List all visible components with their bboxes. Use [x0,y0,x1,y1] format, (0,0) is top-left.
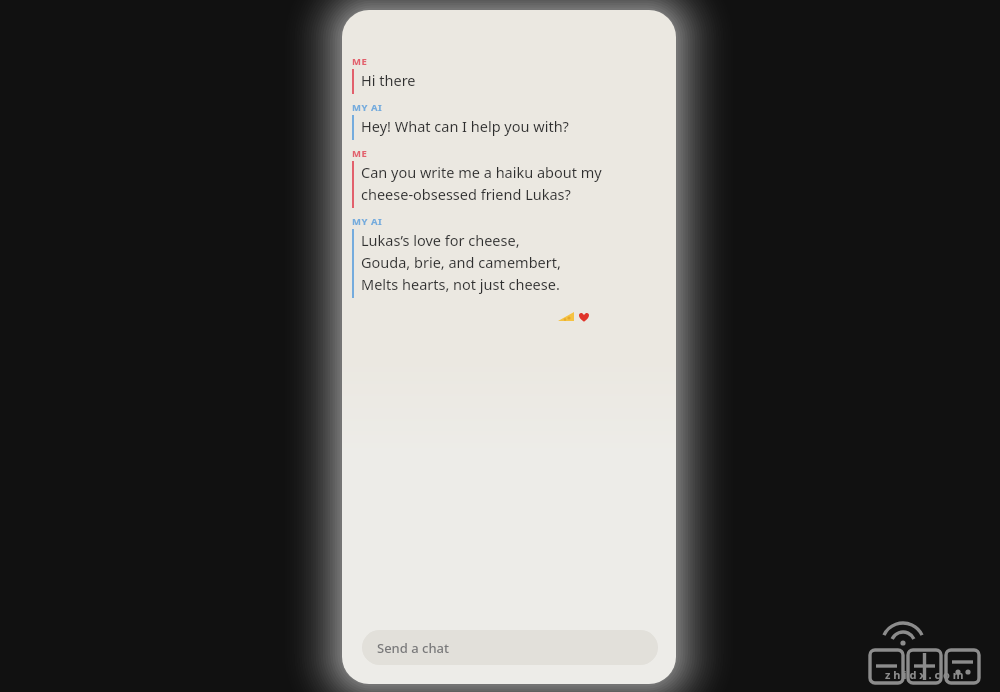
button[interactable]: ME [342,55,676,94]
button[interactable]: Send a chat [362,630,658,665]
staticText: Gouda, brie, and camembert, [361,252,561,272]
staticText: ME [352,55,368,68]
staticText: MY AI [352,101,383,114]
staticText: Lukas’s love for cheese, [361,230,520,250]
staticText: ME [352,147,368,160]
staticText: Hi there [361,70,416,90]
staticText: Melts hearts, not just cheese. [361,274,560,294]
button[interactable]: MY AI [342,215,676,298]
button[interactable]: ME [342,147,676,208]
button[interactable]: MY AI [342,101,676,140]
staticText: cheese-obsessed friend Lukas? [361,184,571,204]
staticText: Hey! What can I help you with? [361,116,569,136]
staticText: Send a chat [377,639,449,657]
staticText: z h i d x . c o m [885,667,964,682]
other: zhidx.com watermark [860,624,988,682]
staticText: Can you write me a haiku about my [361,162,602,182]
staticText: MY AI [352,215,383,228]
